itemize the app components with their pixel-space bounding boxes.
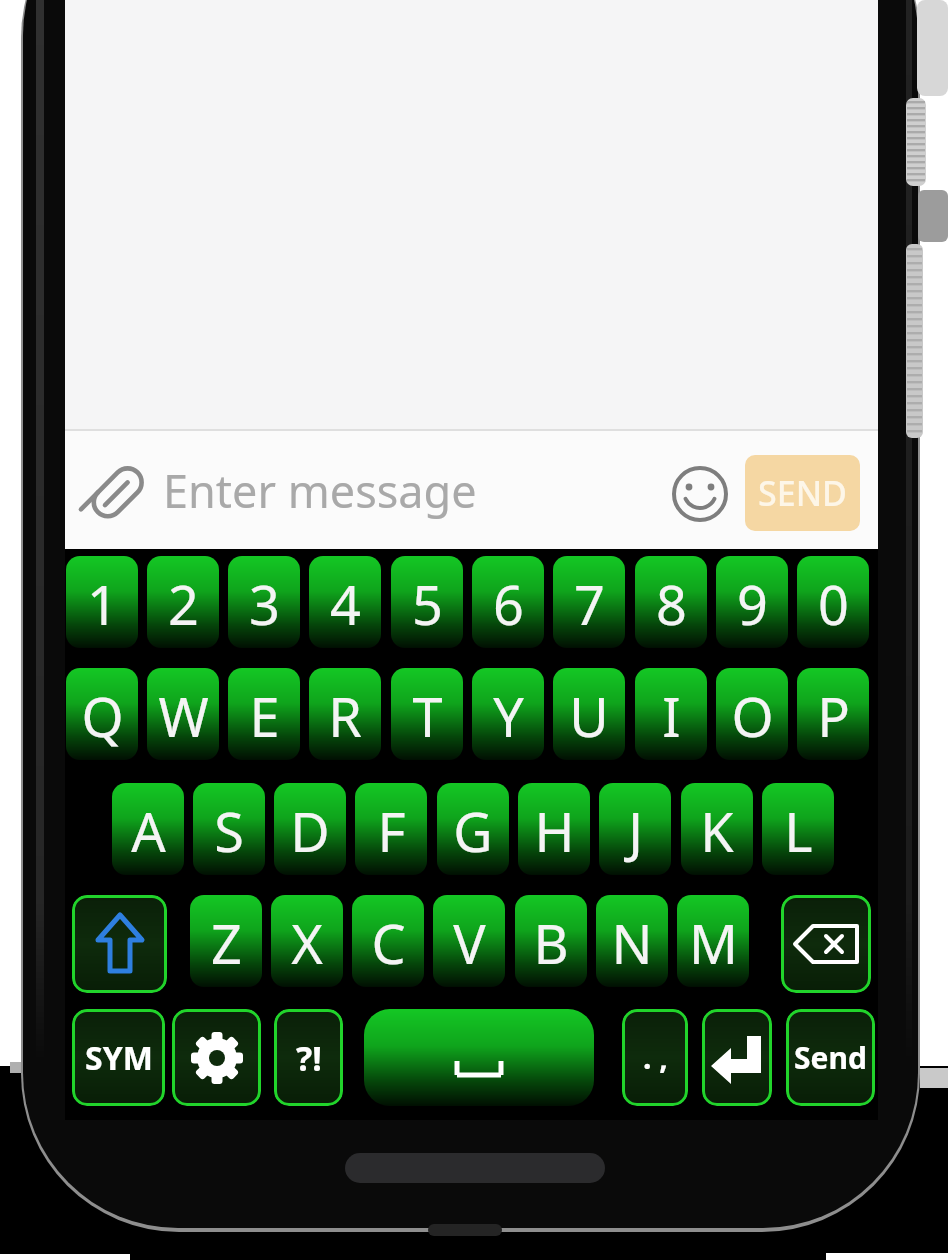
- staticText: 2: [168, 567, 199, 641]
- button[interactable]: T: [391, 668, 463, 760]
- staticText: J: [628, 794, 643, 868]
- staticText: 3: [249, 567, 280, 641]
- staticText: 0: [818, 567, 849, 641]
- button[interactable]: H: [518, 783, 590, 875]
- staticText: H: [534, 794, 575, 868]
- staticText: W: [158, 679, 209, 753]
- button[interactable]: 4: [309, 556, 381, 648]
- staticText: G: [453, 794, 493, 868]
- staticText: V: [453, 906, 486, 980]
- staticText: N: [611, 906, 653, 980]
- staticText: 7: [574, 567, 605, 641]
- staticText: SYM: [85, 1036, 153, 1080]
- button[interactable]: Send: [786, 1009, 875, 1106]
- staticText: 6: [493, 567, 524, 641]
- staticText: Q: [81, 679, 124, 753]
- staticText: F: [377, 794, 406, 868]
- button[interactable]: 9: [716, 556, 788, 648]
- staticText: 8: [656, 567, 687, 641]
- button[interactable]: [781, 895, 871, 993]
- button[interactable]: 3: [228, 556, 300, 648]
- button[interactable]: F: [355, 783, 427, 875]
- button[interactable]: B: [515, 895, 587, 987]
- staticText: E: [249, 679, 280, 753]
- button[interactable]: D: [274, 783, 346, 875]
- staticText: D: [290, 794, 330, 868]
- staticText: L: [784, 794, 813, 868]
- staticText: O: [731, 679, 774, 753]
- button[interactable]: U: [553, 668, 625, 760]
- button[interactable]: [72, 895, 167, 993]
- staticText: Send: [794, 1037, 867, 1078]
- button[interactable]: Y: [472, 668, 544, 760]
- button[interactable]: X: [271, 895, 343, 987]
- staticText: R: [328, 679, 362, 753]
- button[interactable]: 6: [472, 556, 544, 648]
- button[interactable]: M: [677, 895, 749, 987]
- button[interactable]: Z: [190, 895, 262, 987]
- button[interactable]: V: [433, 895, 505, 987]
- button[interactable]: E: [228, 668, 300, 760]
- button[interactable]: [364, 1009, 594, 1106]
- button[interactable]: 7: [553, 556, 625, 648]
- staticText: M: [689, 906, 738, 980]
- button[interactable]: [172, 1009, 261, 1106]
- button[interactable]: O: [716, 668, 788, 760]
- staticText: S: [214, 794, 244, 868]
- staticText: K: [700, 794, 734, 868]
- staticText: I: [662, 679, 681, 753]
- staticText: 1: [87, 567, 118, 641]
- button[interactable]: I: [635, 668, 707, 760]
- button[interactable]: L: [762, 783, 834, 875]
- button[interactable]: 2: [147, 556, 219, 648]
- button[interactable]: 1: [66, 556, 138, 648]
- staticText: P: [817, 679, 850, 753]
- button[interactable]: P: [797, 668, 869, 760]
- button[interactable]: K: [681, 783, 753, 875]
- button[interactable]: 5: [391, 556, 463, 648]
- staticText: 5: [412, 567, 443, 641]
- button[interactable]: SEND: [745, 455, 860, 531]
- button[interactable]: C: [352, 895, 424, 987]
- button[interactable]: 8: [635, 556, 707, 648]
- button[interactable]: W: [147, 668, 219, 760]
- staticText: SEND: [758, 470, 847, 516]
- staticText: T: [412, 679, 443, 753]
- button[interactable]: N: [596, 895, 668, 987]
- button[interactable]: [672, 466, 728, 522]
- button[interactable]: Q: [66, 668, 138, 760]
- button[interactable]: J: [599, 783, 671, 875]
- staticText: Y: [493, 679, 524, 753]
- button[interactable]: SYM: [72, 1009, 165, 1106]
- staticText: B: [533, 906, 569, 980]
- staticText: 9: [737, 567, 768, 641]
- button[interactable]: [702, 1009, 772, 1106]
- button[interactable]: ?!: [274, 1009, 343, 1106]
- staticText: A: [131, 794, 166, 868]
- staticText: X: [291, 906, 323, 980]
- staticText: U: [569, 679, 609, 753]
- button[interactable]: [84, 460, 150, 526]
- staticText: ?!: [296, 1035, 322, 1081]
- staticText: Z: [211, 906, 242, 980]
- staticText: 4: [330, 567, 361, 641]
- staticText: C: [371, 906, 406, 980]
- staticText: . ,: [643, 1037, 668, 1078]
- button[interactable]: R: [309, 668, 381, 760]
- staticText: Enter message: [163, 460, 477, 521]
- button[interactable]: G: [437, 783, 509, 875]
- button[interactable]: S: [193, 783, 265, 875]
- button[interactable]: 0: [797, 556, 869, 648]
- button[interactable]: A: [112, 783, 184, 875]
- button[interactable]: . ,: [622, 1009, 688, 1106]
